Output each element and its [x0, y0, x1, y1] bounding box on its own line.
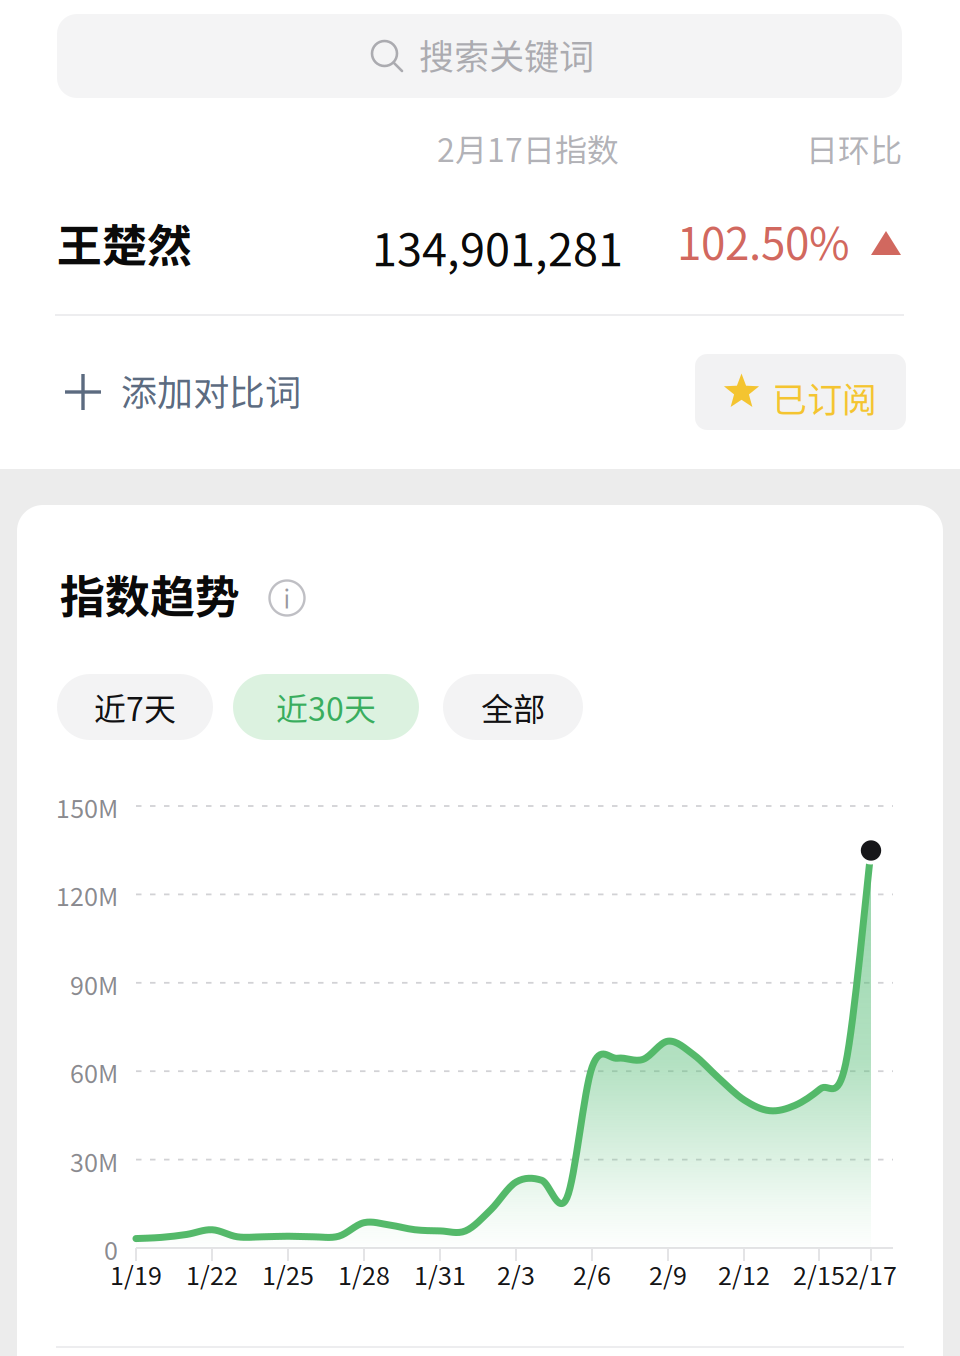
staticText: 30M — [70, 1143, 118, 1179]
button[interactable]: 已订阅 — [695, 354, 906, 430]
staticText: 2/6 — [573, 1256, 611, 1292]
staticText: 已订阅 — [772, 372, 877, 423]
staticText: 60M — [70, 1054, 118, 1090]
staticText: 2/12 — [718, 1256, 770, 1292]
staticText: 1/31 — [414, 1256, 466, 1292]
staticText: 2/17 — [845, 1256, 897, 1292]
staticText: 150M — [56, 789, 118, 825]
staticText: 近30天 — [276, 684, 376, 730]
button[interactable]: 近7天 — [57, 674, 213, 740]
staticText: 2/3 — [497, 1256, 535, 1292]
staticText: 1/28 — [338, 1256, 390, 1292]
staticText: 1/22 — [186, 1256, 238, 1292]
staticText: 2/9 — [649, 1256, 687, 1292]
staticText: 2月17日指数 — [437, 125, 619, 171]
staticText: 90M — [70, 966, 118, 1002]
staticText: 近7天 — [94, 684, 176, 730]
staticText: 王楚然 — [57, 210, 192, 275]
staticText: 102.50% — [677, 209, 850, 273]
staticText: 134,901,281 — [372, 214, 623, 279]
staticText: 2/15 — [793, 1256, 845, 1292]
staticText: 1/25 — [262, 1256, 314, 1292]
staticText: 全部 — [481, 684, 545, 730]
button[interactable]: 全部 — [443, 674, 583, 740]
button[interactable]: 添加对比词 — [64, 368, 324, 430]
button[interactable]: 近30天 — [233, 674, 419, 740]
staticText: 日环比 — [806, 125, 902, 171]
staticText: 0 — [104, 1231, 118, 1267]
button[interactable]: 搜索关键词 — [57, 14, 902, 98]
staticText: 搜索关键词 — [419, 29, 594, 80]
staticText: 添加对比词 — [121, 364, 301, 416]
staticText: 1/19 — [110, 1256, 162, 1292]
staticText: 指数趋势 — [60, 561, 240, 626]
staticText: 120M — [56, 877, 118, 913]
staticText: i — [283, 581, 290, 615]
